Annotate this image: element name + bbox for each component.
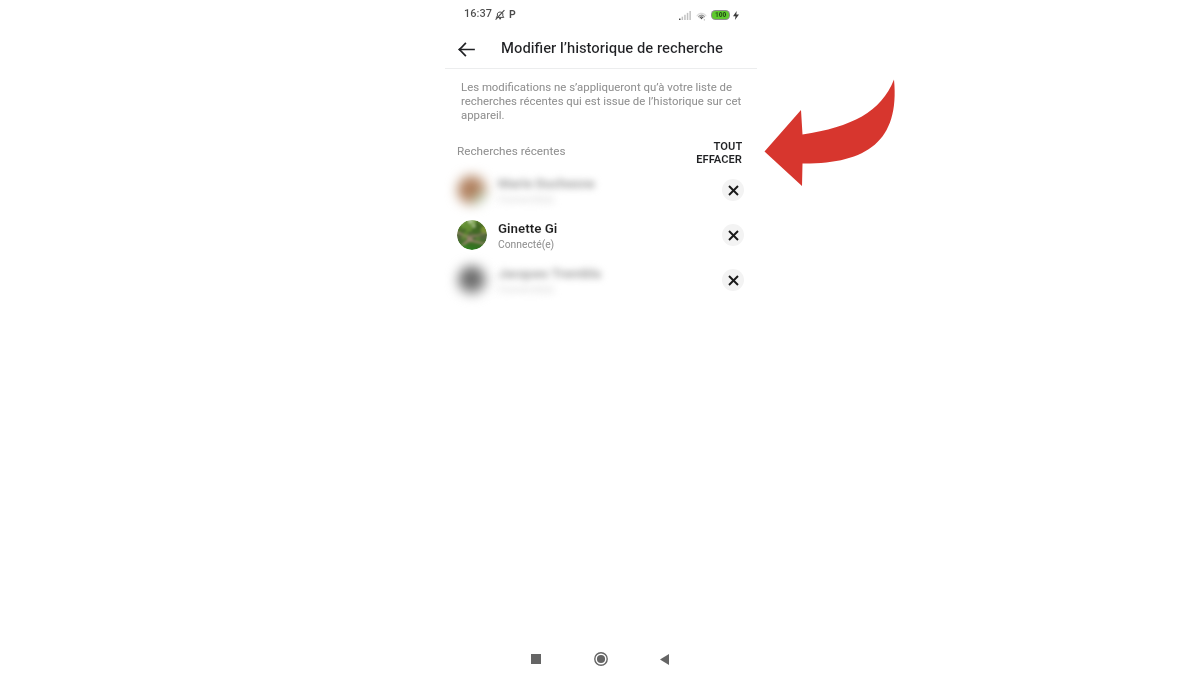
staticText: 16:37 — [464, 7, 492, 20]
staticText: Marie Duchesne — [498, 176, 595, 192]
button[interactable]: Remove — [722, 224, 744, 246]
button[interactable]: Back — [453, 36, 479, 62]
button[interactable]: Ginette Gi — [445, 212, 757, 257]
button[interactable]: Remove — [722, 269, 744, 291]
staticText: Jacques Trembla — [498, 266, 601, 282]
button[interactable]: Recent apps — [520, 643, 552, 675]
staticText: Les modifications ne s’appliqueront qu’à… — [461, 80, 745, 122]
button[interactable]: TOUT EFFACER — [690, 140, 742, 165]
staticText: 100 — [715, 11, 727, 19]
button[interactable]: Marie Duchesne — [445, 167, 757, 212]
staticText: Recherches récentes — [457, 144, 566, 158]
staticText: Modifier l’historique de recherche — [501, 39, 723, 56]
button[interactable]: Back — [648, 643, 680, 675]
button[interactable]: Home — [585, 643, 617, 675]
staticText: Connecté(e) — [498, 238, 555, 250]
button[interactable]: Remove — [722, 179, 744, 201]
staticText: Ginette Gi — [498, 221, 558, 237]
staticText: TOUT EFFACER — [690, 140, 742, 165]
button[interactable]: Jacques Trembla — [445, 257, 757, 302]
staticText: P — [509, 8, 516, 20]
